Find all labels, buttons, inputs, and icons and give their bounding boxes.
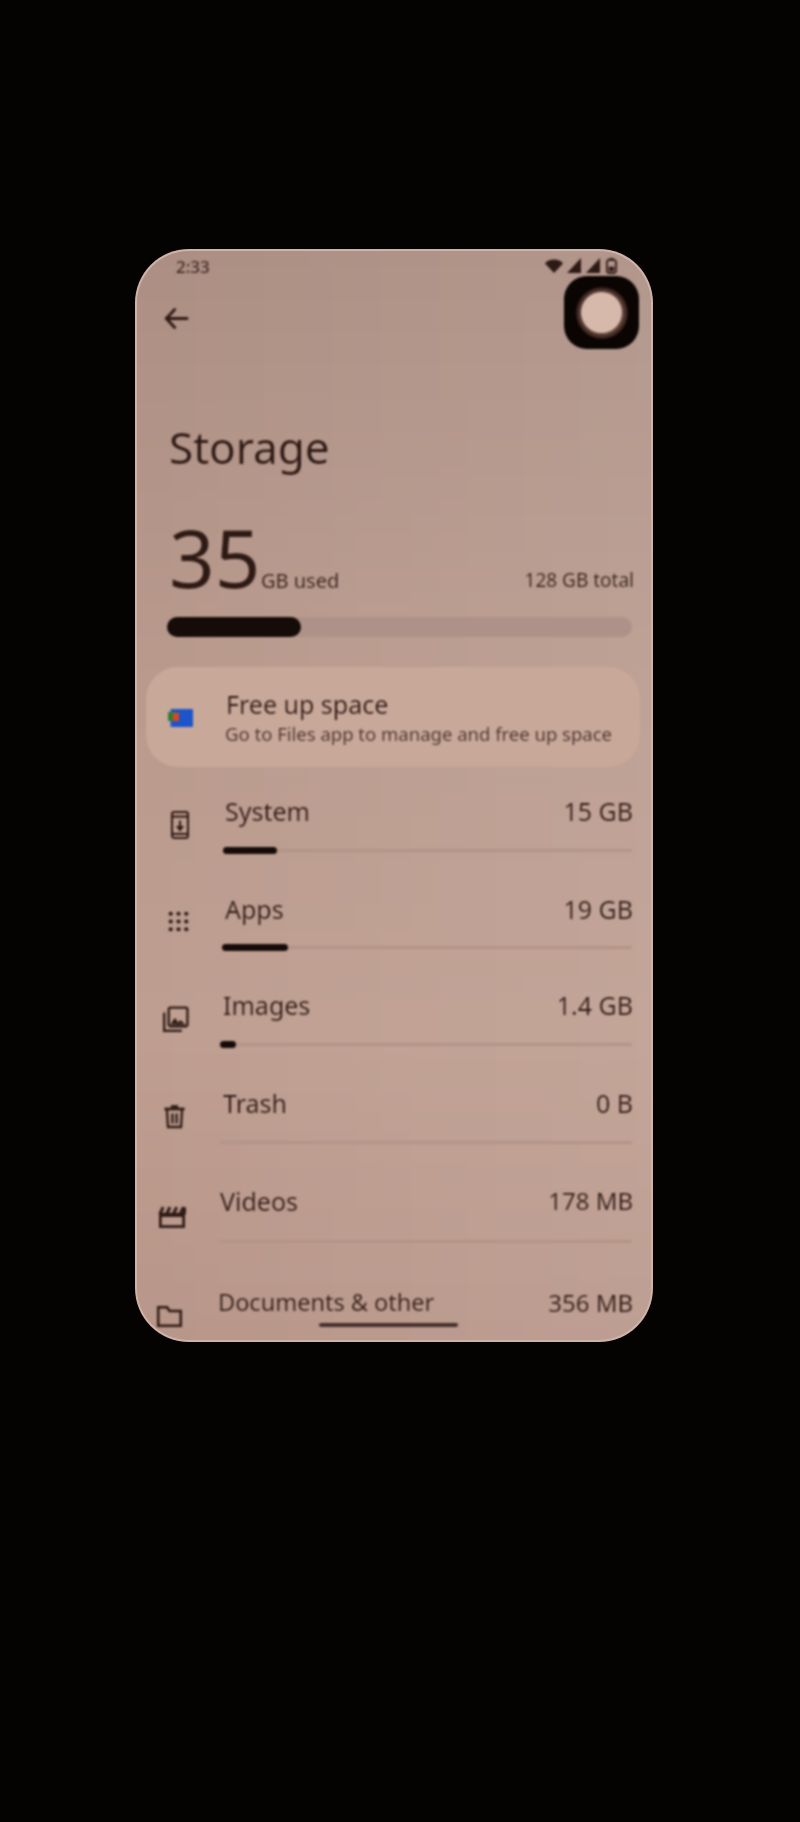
button[interactable]: Back [152, 294, 200, 342]
staticText: GB used [261, 567, 340, 594]
button[interactable] [137, 1263, 651, 1340]
staticText: 35 [169, 502, 261, 611]
staticText: 1.4 GB [556, 988, 633, 1022]
staticText: 2:33 [176, 255, 210, 278]
staticText: 15 GB [563, 794, 633, 828]
button[interactable] [137, 1161, 651, 1259]
staticText: 128 GB total [524, 567, 634, 593]
staticText: Apps [225, 892, 284, 926]
staticText: 0 B [595, 1086, 633, 1120]
staticText: System [225, 794, 310, 828]
staticText: Go to Files app to manage and free up sp… [225, 721, 613, 746]
button[interactable] [137, 965, 651, 1063]
staticText: Images [223, 988, 311, 1022]
staticText: 356 MB [548, 1286, 633, 1319]
button[interactable] [146, 667, 640, 767]
staticText: Free up space [226, 687, 389, 721]
staticText: 178 MB [548, 1184, 633, 1217]
button[interactable] [137, 771, 651, 869]
button[interactable] [137, 869, 651, 967]
staticText: Videos [220, 1184, 299, 1218]
staticText: Trash [223, 1086, 287, 1120]
button[interactable] [137, 1063, 651, 1161]
staticText: Documents & other [218, 1286, 435, 1318]
staticText: Storage [169, 417, 330, 477]
staticText: 19 GB [563, 892, 633, 926]
